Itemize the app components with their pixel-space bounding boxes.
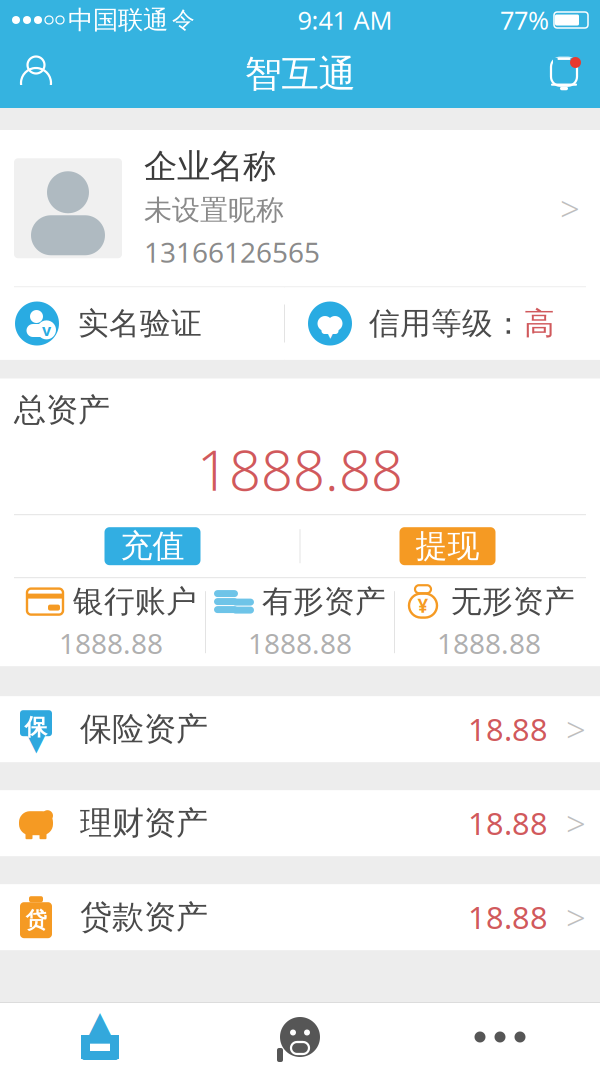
staticText: 1888.88	[197, 432, 403, 506]
button[interactable]: Profile	[8, 46, 64, 102]
staticText: 保险资产	[80, 709, 208, 749]
button[interactable]: Notifications	[536, 46, 592, 102]
button[interactable]: 企业名称	[0, 130, 600, 286]
button[interactable]: 贷	[0, 884, 600, 950]
button[interactable]: v	[0, 287, 284, 359]
button[interactable]: 银行账户	[17, 581, 205, 663]
staticText: 充值	[120, 526, 184, 566]
staticText: 信用等级：	[369, 305, 524, 342]
staticText: 1888.88	[248, 624, 352, 662]
staticText: ▼	[27, 729, 45, 756]
staticText: 1888.88	[437, 624, 541, 662]
button[interactable]: Customer service	[200, 1003, 400, 1071]
staticText: 智互通	[244, 51, 355, 97]
staticText: 银行账户	[73, 583, 197, 620]
staticText: 中国联通	[68, 4, 168, 35]
staticText: 77%	[500, 3, 549, 37]
staticText: 13166126565	[144, 233, 320, 270]
staticText: 提现	[415, 526, 479, 566]
staticText: 1888.88	[59, 624, 163, 662]
staticText: 18.88	[468, 897, 548, 937]
staticText: >	[560, 185, 580, 231]
staticText: >	[566, 894, 586, 940]
staticText: ▼	[323, 319, 337, 341]
staticText: 贷款资产	[80, 897, 208, 937]
staticText: 未设置昵称	[144, 193, 284, 227]
staticText: ¥	[417, 593, 428, 618]
staticText: 理财资产	[80, 803, 208, 843]
staticText: 企业名称	[144, 146, 276, 187]
staticText: 高	[524, 305, 555, 342]
button[interactable]: ¥	[395, 581, 583, 663]
staticText: 有形资产	[262, 583, 386, 620]
button[interactable]: 有形资产	[206, 581, 394, 663]
button[interactable]: 理财资产	[0, 790, 600, 856]
staticText: 18.88	[468, 709, 548, 749]
staticText: 贷	[25, 907, 46, 933]
staticText: 令	[172, 6, 195, 34]
staticText: 9:41 AM	[297, 3, 392, 37]
staticText: 总资产	[14, 390, 110, 430]
staticText: ▲	[84, 1002, 115, 1048]
button[interactable]: 提现	[399, 527, 495, 565]
staticText: >	[566, 706, 586, 752]
staticText: 18.88	[468, 803, 548, 843]
staticText: >	[566, 800, 586, 846]
staticText: 保	[24, 713, 47, 741]
staticText: v	[42, 319, 51, 340]
staticText: 无形资产	[451, 583, 575, 620]
button[interactable]: ▼	[0, 696, 600, 762]
button[interactable]: ▼	[285, 287, 600, 359]
button[interactable]: More	[400, 1003, 600, 1071]
button[interactable]: Home	[0, 1003, 200, 1071]
staticText: 实名验证	[78, 305, 202, 342]
button[interactable]: 充值	[104, 527, 200, 565]
